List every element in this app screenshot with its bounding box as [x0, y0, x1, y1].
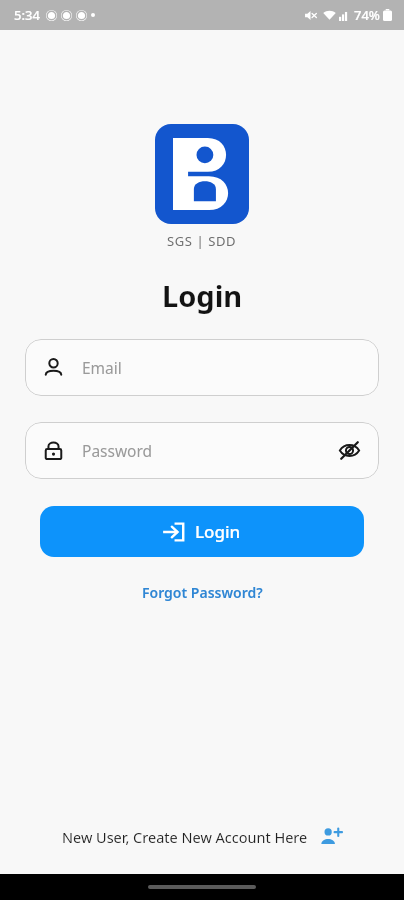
- other: Create new account: [320, 826, 342, 848]
- button[interactable]: Email: [25, 339, 379, 396]
- staticText: Forgot Password?: [142, 583, 263, 602]
- staticText: Password: [82, 440, 153, 461]
- button[interactable]: New User, Create New Account Here: [0, 816, 404, 858]
- staticText: SGS | SDD: [167, 232, 237, 250]
- staticText: Email: [82, 357, 122, 378]
- staticText: 74%: [354, 6, 380, 24]
- button[interactable]: Forgot Password?: [132, 579, 273, 606]
- button[interactable]: Password: [25, 422, 379, 479]
- staticText: 5:34: [14, 6, 40, 24]
- staticText: Login: [195, 520, 241, 543]
- staticText: New User, Create New Account Here: [62, 827, 308, 847]
- button[interactable]: Login: [40, 506, 364, 557]
- button[interactable]: Toggle password visibility: [338, 439, 361, 462]
- staticText: Login: [162, 276, 243, 315]
